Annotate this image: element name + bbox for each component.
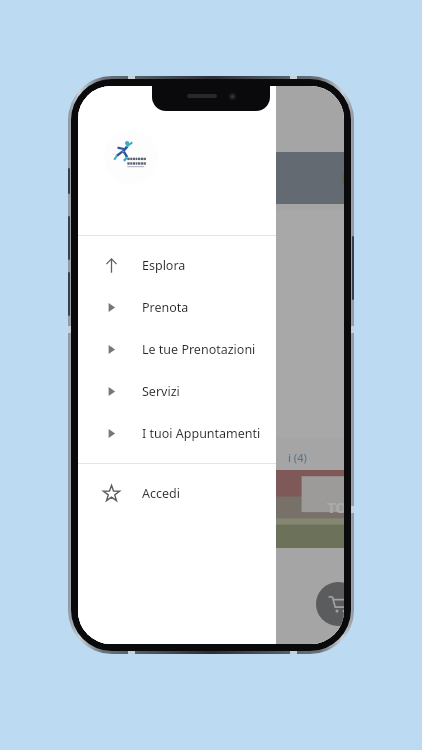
button[interactable]: I tuoi Appuntamenti	[78, 412, 276, 454]
staticText: Esplora	[142, 257, 186, 274]
button[interactable]: Accedi	[78, 472, 276, 514]
button[interactable]: Servizi	[78, 370, 276, 412]
button[interactable]: Le tue Prenotazioni	[78, 328, 276, 370]
staticText: Servizi	[142, 383, 180, 400]
button[interactable]: Prenota	[78, 286, 276, 328]
button[interactable]: Esplora	[78, 244, 276, 286]
staticText: I tuoi Appuntamenti	[142, 425, 261, 442]
staticText: Prenota	[142, 299, 189, 316]
staticText: Le tue Prenotazioni	[142, 341, 256, 358]
staticText: Accedi	[142, 485, 180, 502]
button[interactable]: Carrello	[316, 582, 344, 626]
staticText: TOR	[327, 497, 344, 517]
staticText: i (4)	[288, 450, 307, 465]
